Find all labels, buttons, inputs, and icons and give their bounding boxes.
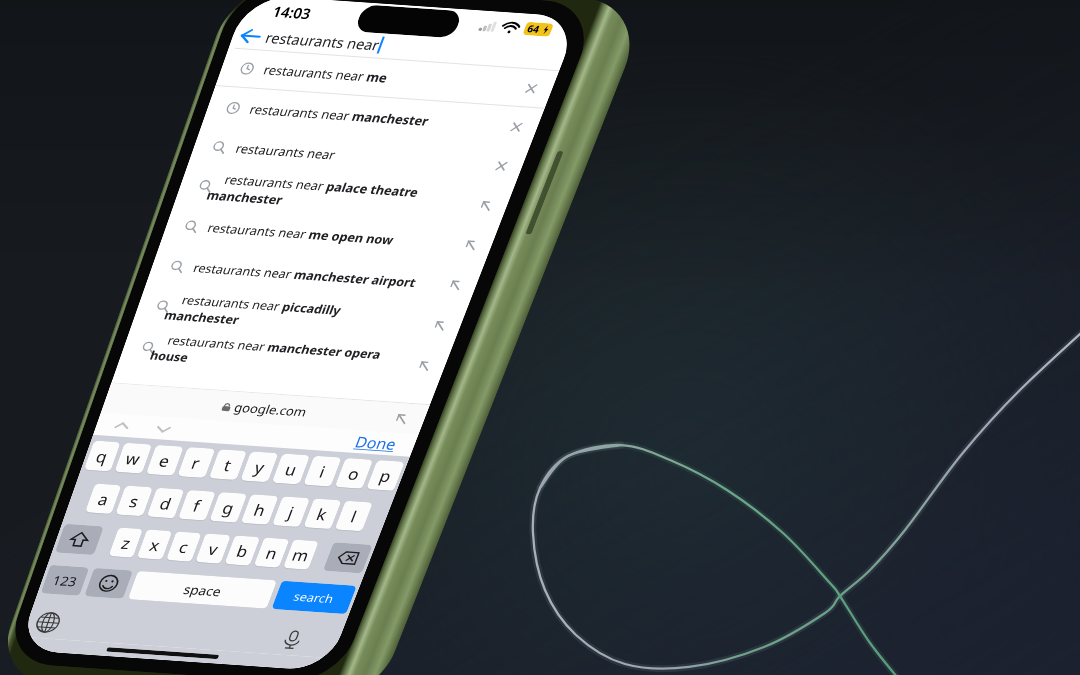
staticText: a bbox=[87, 484, 120, 514]
button[interactable]: Done bbox=[345, 414, 407, 472]
button[interactable]: d bbox=[136, 476, 195, 530]
button[interactable]: k bbox=[293, 486, 352, 541]
staticText: search bbox=[286, 571, 342, 624]
button[interactable]: i bbox=[293, 444, 352, 499]
button[interactable]: Back bbox=[220, 8, 280, 64]
staticText: m bbox=[282, 537, 319, 573]
button[interactable]: f bbox=[168, 478, 226, 533]
staticText: restaurants near bbox=[256, 0, 390, 104]
button[interactable]: e bbox=[135, 433, 194, 488]
button[interactable]: restaurants near manchester bbox=[187, 0, 558, 291]
staticText: u bbox=[275, 454, 308, 485]
staticText: space bbox=[175, 564, 230, 616]
staticText: manchester bbox=[156, 275, 247, 360]
staticText: google.com bbox=[226, 367, 316, 452]
button[interactable]: w bbox=[104, 430, 163, 486]
button[interactable]: a bbox=[74, 472, 132, 526]
staticText: restaurants near bbox=[227, 96, 347, 208]
staticText: q bbox=[85, 441, 119, 472]
button[interactable]: n bbox=[244, 526, 300, 579]
staticText: w bbox=[115, 441, 151, 476]
staticText: restaurants near manchester bbox=[241, 23, 437, 207]
staticText: i bbox=[309, 459, 336, 484]
staticText: x bbox=[139, 531, 170, 559]
staticText: 64 bbox=[521, 17, 546, 41]
button[interactable]: restaurants near piccadilly bbox=[117, 144, 482, 487]
staticText: v bbox=[198, 535, 229, 563]
staticText: o bbox=[338, 458, 371, 489]
button[interactable]: m bbox=[273, 528, 329, 581]
button[interactable]: Dictation bbox=[258, 607, 327, 671]
staticText: s bbox=[119, 487, 150, 516]
staticText: 14:03 bbox=[263, 0, 321, 39]
staticText: n bbox=[256, 538, 288, 568]
button[interactable]: q bbox=[73, 429, 131, 483]
staticText: t bbox=[214, 451, 243, 479]
staticText: restaurants near palace theatre bbox=[216, 87, 427, 285]
button[interactable]: p bbox=[356, 448, 415, 503]
button[interactable]: restaurants near manchester airport bbox=[131, 103, 497, 447]
button[interactable]: o bbox=[324, 446, 383, 501]
staticText: j bbox=[278, 499, 305, 525]
button[interactable]: Backspace bbox=[313, 525, 383, 591]
staticText: manchester bbox=[198, 154, 291, 241]
staticText: Done bbox=[345, 414, 407, 472]
staticText: 123 bbox=[44, 561, 86, 601]
staticText: r bbox=[181, 449, 211, 477]
button[interactable]: restaurants near me open now bbox=[145, 62, 513, 408]
button[interactable]: r bbox=[167, 435, 226, 490]
staticText: house bbox=[142, 331, 197, 382]
staticText: z bbox=[111, 529, 141, 557]
staticText: c bbox=[169, 533, 199, 561]
staticText: restaurants near me open now bbox=[199, 138, 403, 329]
button[interactable]: search bbox=[261, 548, 367, 647]
button[interactable]: s bbox=[105, 473, 163, 528]
button[interactable]: space bbox=[118, 510, 287, 669]
button[interactable]: Previous bbox=[97, 402, 146, 449]
button[interactable]: z bbox=[98, 517, 153, 568]
button[interactable]: Emoji bbox=[74, 551, 143, 616]
button[interactable]: restaurants near bbox=[173, 0, 543, 330]
button[interactable]: h bbox=[231, 482, 289, 537]
button[interactable]: y bbox=[230, 439, 289, 494]
button[interactable]: b bbox=[214, 524, 270, 577]
button[interactable]: 123 bbox=[30, 548, 100, 613]
button[interactable]: restaurants near me bbox=[201, 0, 572, 253]
button[interactable]: j bbox=[262, 484, 320, 539]
button[interactable]: v bbox=[185, 522, 241, 575]
staticText: d bbox=[149, 488, 182, 519]
button[interactable]: c bbox=[156, 520, 212, 573]
button[interactable]: t bbox=[198, 437, 257, 492]
button[interactable]: Next bbox=[138, 405, 188, 452]
button[interactable]: l bbox=[325, 488, 383, 543]
staticText: restaurants near manchester airport bbox=[185, 163, 425, 388]
staticText: f bbox=[183, 492, 211, 519]
staticText: h bbox=[243, 495, 276, 525]
button[interactable]: restaurants near manchester opera bbox=[102, 185, 467, 527]
staticText: g bbox=[212, 492, 245, 523]
staticText: y bbox=[244, 453, 275, 482]
button[interactable]: x bbox=[126, 518, 182, 571]
staticText: p bbox=[369, 460, 402, 492]
button[interactable]: Globe bbox=[14, 590, 82, 655]
button[interactable]: restaurants near palace theatre bbox=[159, 22, 528, 369]
staticText: restaurants near manchester opera bbox=[160, 239, 389, 455]
staticText: restaurants near piccadilly bbox=[174, 223, 349, 388]
button[interactable]: google.com bbox=[90, 244, 440, 573]
staticText: restaurants near me bbox=[255, 7, 396, 140]
staticText: e bbox=[148, 446, 181, 476]
staticText: b bbox=[226, 536, 259, 566]
staticText: l bbox=[340, 504, 368, 529]
button[interactable]: Shift bbox=[44, 506, 114, 572]
staticText: k bbox=[306, 499, 338, 529]
button[interactable]: u bbox=[262, 441, 320, 496]
button[interactable]: g bbox=[199, 480, 257, 535]
